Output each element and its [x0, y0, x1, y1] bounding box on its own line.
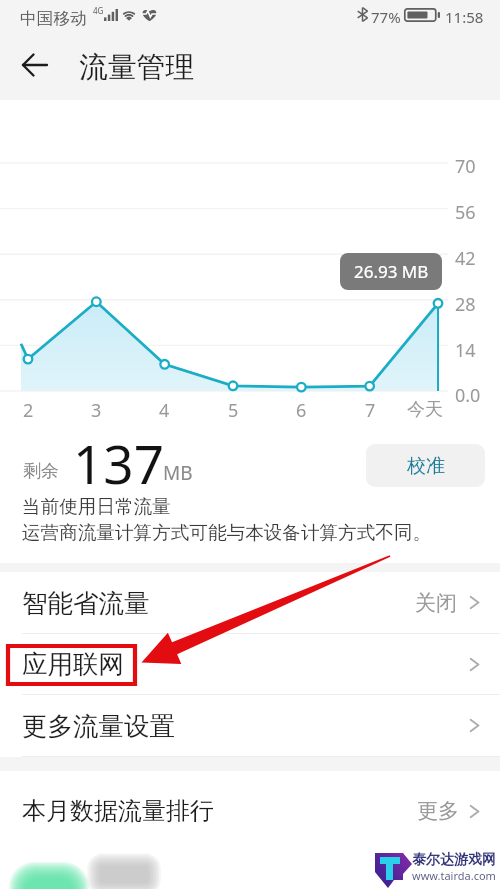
staticText: 今天	[407, 398, 443, 421]
button[interactable]: 更多	[417, 798, 480, 824]
staticText: 中国移动	[20, 8, 87, 29]
staticText: www.tairda.com	[412, 868, 496, 883]
staticText: 7	[365, 398, 376, 423]
staticText: 56	[455, 200, 476, 225]
staticText: 137	[73, 427, 164, 499]
staticText: 关闭	[415, 590, 457, 616]
button[interactable]: 应用联网	[0, 634, 500, 695]
staticText: 应用联网	[22, 648, 124, 680]
staticText: 77%	[371, 7, 401, 27]
staticText: 5	[228, 398, 239, 423]
staticText: 当前使用日常流量	[22, 495, 171, 518]
button[interactable]: 校准	[366, 444, 485, 487]
button[interactable]: 更多流量设置	[0, 695, 500, 757]
staticText: 0.0	[455, 383, 481, 408]
staticText: 26.93 MB	[354, 260, 429, 283]
staticText: 剩余	[23, 460, 59, 483]
staticText: 流量管理	[79, 49, 195, 85]
button[interactable]: Back	[15, 45, 55, 85]
staticText: 42	[455, 246, 476, 271]
staticText: MB	[163, 460, 193, 486]
staticText: 校准	[407, 454, 445, 478]
staticText: 11:58	[445, 7, 484, 27]
staticText: 智能省流量	[22, 587, 150, 619]
staticText: 70	[455, 154, 476, 179]
button[interactable]: 智能省流量	[0, 572, 500, 634]
staticText: 2	[23, 398, 34, 423]
staticText: 泰尔达游戏网	[412, 851, 496, 869]
staticText: 14	[455, 338, 476, 363]
staticText: 3	[91, 398, 102, 423]
staticText: 本月数据流量排行	[22, 796, 214, 826]
staticText: 运营商流量计算方式可能与本设备计算方式不同。	[22, 521, 432, 544]
staticText: 6	[296, 398, 307, 423]
staticText: 更多	[417, 798, 459, 824]
staticText: 4	[159, 398, 170, 423]
staticText: 4G	[93, 5, 104, 16]
staticText: 28	[455, 292, 476, 317]
staticText: 更多流量设置	[22, 710, 175, 742]
